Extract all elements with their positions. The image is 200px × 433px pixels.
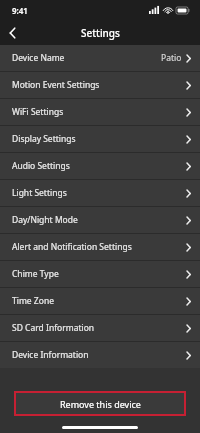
button[interactable]: Back <box>0 21 24 45</box>
staticText: Time Zone <box>12 295 54 307</box>
staticText: Light Settings <box>12 187 67 199</box>
staticText: 9:41 <box>12 5 28 16</box>
button[interactable]: Day/Night Mode <box>0 207 200 233</box>
staticText: Display Settings <box>12 133 76 145</box>
staticText: Chime Type <box>12 268 59 280</box>
staticText: Device Information <box>12 349 89 361</box>
button[interactable]: Remove this device <box>14 391 186 416</box>
button[interactable]: Alert and Notification Settings <box>0 234 200 260</box>
button[interactable]: Time Zone <box>0 288 200 314</box>
button[interactable]: SD Card Information <box>0 315 200 341</box>
staticText: Device Name <box>12 52 65 64</box>
staticText: Settings <box>81 26 120 40</box>
button[interactable]: Light Settings <box>0 180 200 206</box>
button[interactable]: Audio Settings <box>0 153 200 179</box>
staticText: Remove this device <box>60 398 141 410</box>
button[interactable]: Display Settings <box>0 126 200 152</box>
staticText: Alert and Notification Settings <box>12 241 132 253</box>
button[interactable]: Motion Event Settings <box>0 72 200 98</box>
staticText: Audio Settings <box>12 160 70 172</box>
staticText: WiFi Settings <box>12 106 64 118</box>
button[interactable]: WiFi Settings <box>0 99 200 125</box>
staticText: SD Card Information <box>12 322 95 334</box>
staticText: Motion Event Settings <box>12 79 100 91</box>
button[interactable]: Device Name <box>0 45 200 71</box>
button[interactable]: Chime Type <box>0 261 200 287</box>
button[interactable]: Device Information <box>0 342 200 368</box>
staticText: Day/Night Mode <box>12 214 78 226</box>
staticText: Patio <box>161 52 182 64</box>
